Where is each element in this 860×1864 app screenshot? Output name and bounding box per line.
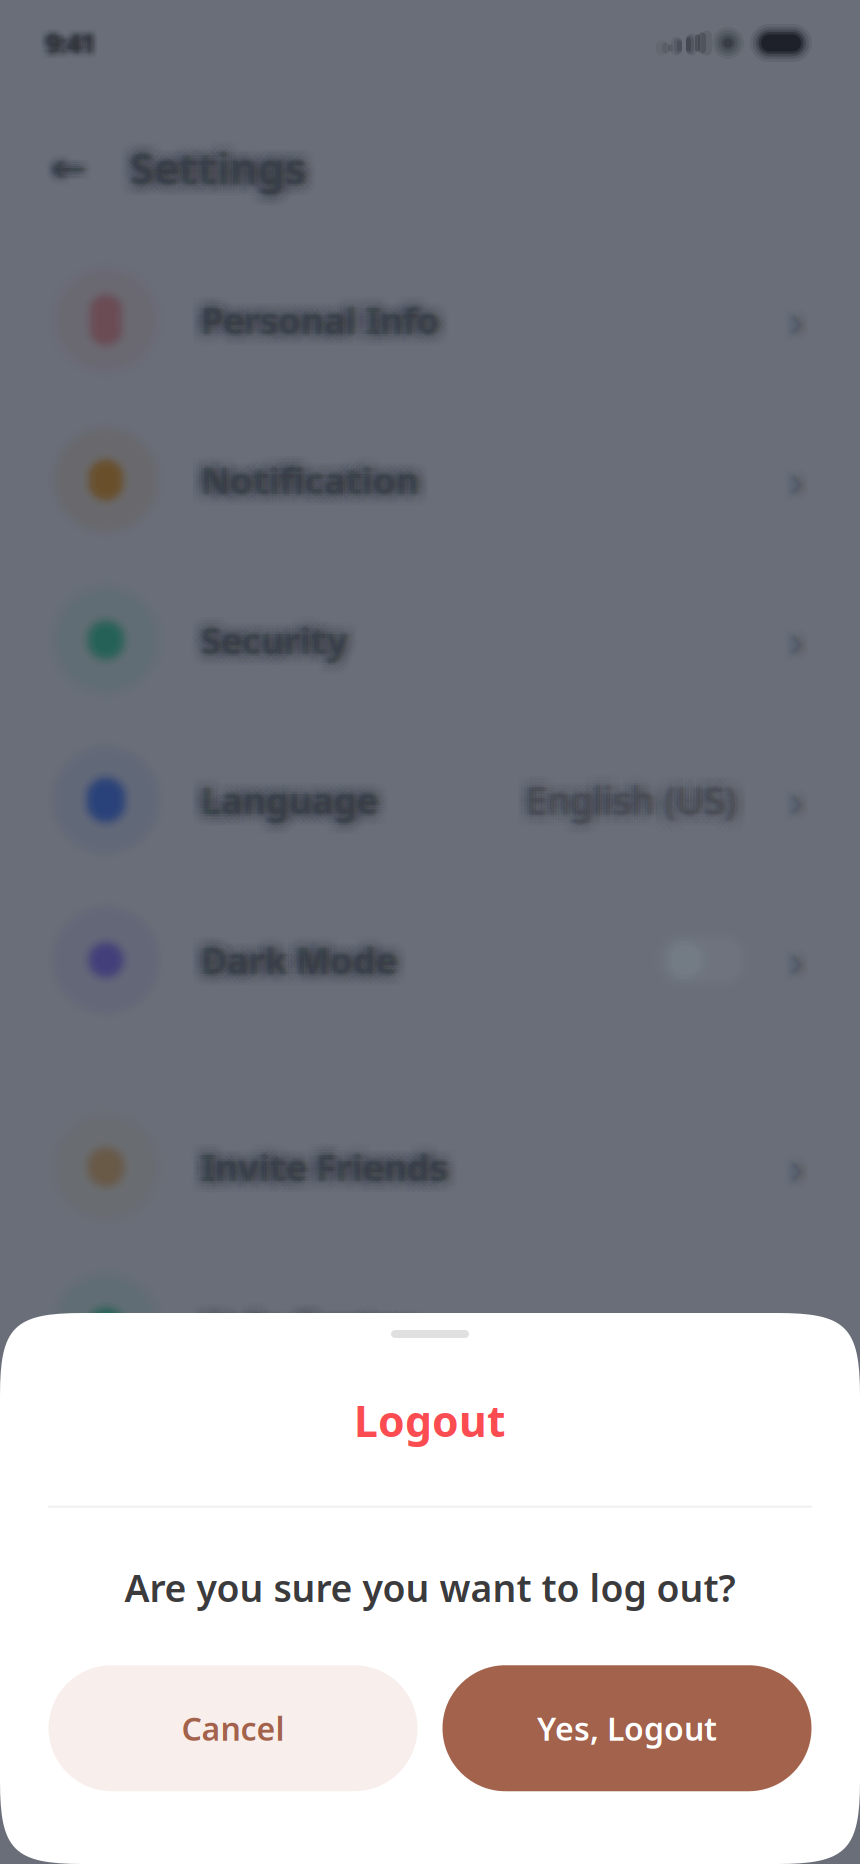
staticText: Language — [198, 773, 375, 821]
staticText: Dark Mode — [212, 930, 408, 978]
staticText: › — [794, 456, 808, 512]
staticText: Dark Mode — [212, 947, 408, 995]
staticText: Personal Info — [190, 307, 429, 355]
staticText: Notification — [209, 448, 427, 495]
staticText: Invite Friends — [205, 1141, 452, 1189]
staticText: › — [790, 448, 804, 504]
staticText: › — [787, 1299, 801, 1355]
staticText: Settings — [136, 140, 312, 196]
staticText: › — [792, 1297, 806, 1353]
button[interactable]: Dark Mode — [0, 880, 860, 1040]
staticText: 9:41 — [41, 31, 90, 64]
button[interactable]: Help Center — [0, 1247, 860, 1407]
staticText: › — [786, 772, 800, 828]
staticText: › — [788, 294, 802, 350]
staticText: Security — [209, 624, 356, 672]
staticText: ← — [55, 144, 90, 191]
staticText: › — [792, 930, 806, 986]
staticText: › — [798, 1291, 812, 1347]
staticText: › — [782, 616, 796, 672]
staticText: › — [794, 616, 808, 672]
staticText: Notification — [208, 456, 426, 504]
staticText: › — [782, 1299, 796, 1355]
staticText: Notification — [212, 456, 430, 504]
staticText: Notification — [195, 467, 413, 515]
staticText: Dark Mode — [201, 939, 397, 986]
staticText: › — [790, 288, 804, 345]
staticText: English (US) — [532, 764, 743, 814]
staticText: › — [792, 1139, 806, 1195]
staticText: › — [792, 298, 806, 354]
staticText: Settings — [130, 142, 306, 199]
staticText: Invite Friends — [209, 1143, 456, 1191]
staticText: Invite Friends — [196, 1143, 443, 1191]
staticText: Invite Friends — [209, 1146, 456, 1194]
staticText: Security — [203, 616, 350, 664]
staticText: ← — [47, 146, 82, 193]
staticText: › — [782, 300, 796, 356]
button[interactable]: Back — [34, 133, 104, 203]
staticText: › — [796, 286, 810, 342]
staticText: › — [794, 1301, 808, 1357]
staticText: Notification — [190, 456, 408, 504]
staticText: › — [786, 452, 800, 508]
staticText: Personal Info — [195, 290, 434, 338]
staticText: 9:41 — [40, 23, 89, 57]
button[interactable]: Cancel — [48, 1665, 417, 1791]
staticText: › — [786, 774, 800, 830]
staticText: › — [792, 932, 806, 988]
staticText: Dark Mode — [193, 936, 389, 984]
staticText: ← — [57, 146, 92, 193]
staticText: Help Center — [202, 1303, 414, 1351]
staticText: › — [792, 934, 806, 990]
staticText: ← — [55, 148, 90, 195]
staticText: Settings — [130, 141, 306, 198]
button[interactable]: Language — [0, 720, 860, 880]
staticText: Help Center — [207, 1309, 419, 1356]
staticText: Personal Info — [199, 294, 438, 342]
staticText: Notification — [212, 467, 430, 515]
staticText: Settings — [134, 142, 310, 198]
staticText: › — [790, 1141, 804, 1198]
staticText: Notification — [193, 459, 411, 507]
button[interactable]: Personal Info — [0, 240, 860, 400]
staticText: Language — [205, 776, 382, 824]
staticText: 9:41 — [43, 23, 92, 57]
staticText: English (US) — [529, 767, 740, 816]
staticText: Security — [204, 619, 351, 667]
staticText: Security — [190, 627, 337, 675]
button[interactable]: Security — [0, 560, 860, 720]
staticText: Notification — [201, 467, 419, 515]
staticText: › — [784, 618, 798, 674]
staticText: Language — [198, 779, 375, 827]
staticText: ← — [43, 136, 78, 183]
staticText: › — [790, 289, 804, 346]
staticText: › — [790, 1297, 804, 1354]
staticText: › — [786, 934, 800, 990]
staticText: › — [794, 940, 808, 996]
staticText: › — [790, 932, 804, 988]
staticText: Settings — [135, 140, 311, 196]
staticText: › — [790, 940, 804, 996]
staticText: Help Center — [199, 1303, 411, 1351]
staticText: Settings — [130, 128, 306, 185]
staticText: Notification — [201, 453, 419, 501]
staticText: › — [788, 290, 802, 346]
staticText: ← — [51, 141, 86, 188]
staticText: › — [785, 1299, 799, 1355]
staticText: English (US) — [519, 775, 730, 825]
button[interactable]: Notification — [0, 400, 860, 560]
staticText: English (US) — [526, 776, 737, 826]
staticText: › — [790, 452, 804, 509]
staticText: › — [790, 1291, 804, 1347]
staticText: English (US) — [537, 775, 748, 825]
staticText: › — [790, 774, 804, 831]
staticText: English (US) — [523, 767, 734, 816]
staticText: › — [798, 932, 812, 988]
button[interactable]: Yes, Logout — [442, 1665, 811, 1791]
staticText: › — [784, 606, 798, 662]
staticText: Personal Info — [207, 302, 446, 349]
button[interactable]: Invite Friends — [0, 1087, 860, 1247]
staticText: 9:41 — [52, 23, 101, 57]
staticText: › — [794, 768, 808, 824]
